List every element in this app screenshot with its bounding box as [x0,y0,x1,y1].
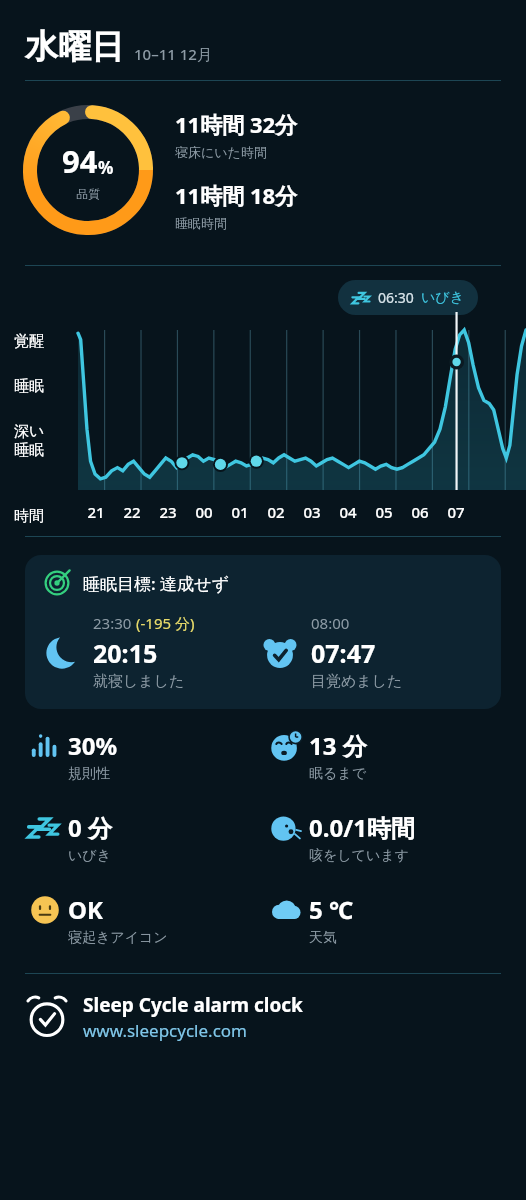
staticText: 睡眠時間 [175,215,227,231]
staticText: 00 [195,502,213,522]
staticText: 眠るまで [309,765,366,783]
staticText: 睡眠 [14,441,44,460]
staticText: 0 分 [68,811,112,844]
staticText: いびき [421,289,464,307]
other: Regularity [30,733,60,759]
staticText: 品質 [76,186,100,201]
staticText: 94 [62,140,98,182]
button[interactable]: 06:30 [338,280,478,315]
staticText: 06:30 [378,288,414,307]
staticText: 深い [14,422,45,441]
staticText: 04 [339,502,357,522]
staticText: 21 [87,502,105,522]
staticText: 時間 [14,507,44,526]
staticText: 23 [159,502,177,522]
staticText: 覚醒 [14,332,44,351]
other: Weather [269,898,303,922]
staticText: 規則性 [68,765,110,783]
staticText: 03 [303,502,321,522]
button[interactable]: Wake up mood [22,893,168,947]
button[interactable]: Sleep Cycle [25,992,526,1042]
other: Time to fall asleep [270,730,302,762]
staticText: 08:00 [311,613,350,633]
staticText: 22 [123,502,141,522]
staticText: 寝床にいた時間 [175,144,267,160]
staticText: 睡眠目標: 達成せず [83,572,229,595]
staticText: 13 分 [309,729,367,762]
staticText: 天気 [309,929,337,947]
button[interactable]: Regularity [22,729,118,783]
other: Bedtime [45,636,79,670]
staticText: Sleep Cycle alarm clock [83,992,303,1018]
staticText: OK [68,893,103,926]
button[interactable]: Time to fall asleep [263,729,367,783]
button[interactable]: Coughing [263,811,415,865]
staticText: 0.0/1時間 [309,811,415,844]
staticText: 就寝しました [93,672,185,691]
other: Snoring [28,814,62,842]
staticText: 30% [68,729,118,762]
button[interactable]: Weather [263,893,354,947]
staticText: 07:47 [311,636,376,670]
staticText: 20:15 [93,636,158,670]
staticText: いびき [68,847,111,865]
other: Sleep goal [45,571,69,595]
staticText: 06 [411,502,429,522]
staticText: 01 [231,502,249,522]
staticText: 11時間 32分 [175,109,298,139]
staticText: 5 ℃ [309,893,354,926]
staticText: 05 [375,502,393,522]
staticText: 11時間 18分 [175,180,298,210]
staticText: 咳をしています [309,847,409,865]
staticText: (-195 分) [136,613,195,633]
staticText: 寝起きアイコン [68,929,168,947]
staticText: 02 [267,502,285,522]
button[interactable]: Sleep goal [25,555,501,709]
staticText: 水曜日 [25,26,124,68]
staticText: www.sleepcycle.com [83,1019,247,1042]
button[interactable]: Snoring [22,811,112,865]
staticText: 07 [447,502,465,522]
other: Sleep Cycle [25,995,69,1039]
other: Wake up mood [30,895,60,925]
other: Coughing [270,812,302,844]
staticText: 23:30 [93,613,136,633]
staticText: 目覚めました [311,672,403,691]
staticText: % [98,156,114,179]
staticText: 睡眠 [14,377,44,396]
staticText: 10–11 12月 [134,44,212,64]
other: Wake up time [263,636,297,670]
